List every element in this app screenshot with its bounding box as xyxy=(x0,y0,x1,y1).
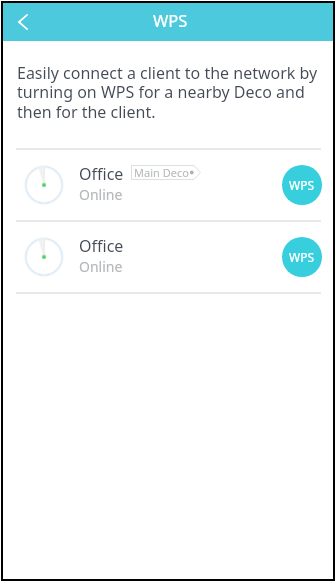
staticText: WPS xyxy=(289,249,315,265)
staticText: Easily connect a client to the network b… xyxy=(17,62,324,123)
staticText: Online xyxy=(79,185,123,204)
button[interactable]: WPS xyxy=(282,237,322,277)
staticText: Main Deco xyxy=(134,165,189,180)
staticText: WPS xyxy=(153,9,188,31)
button[interactable]: Back xyxy=(3,3,43,41)
staticText: Office xyxy=(79,163,124,185)
staticText: Office xyxy=(79,235,124,257)
staticText: Online xyxy=(79,257,123,276)
button[interactable]: Office xyxy=(3,149,333,220)
button[interactable]: Office xyxy=(3,221,333,292)
staticText: WPS xyxy=(289,177,315,193)
button[interactable]: WPS xyxy=(282,165,322,205)
